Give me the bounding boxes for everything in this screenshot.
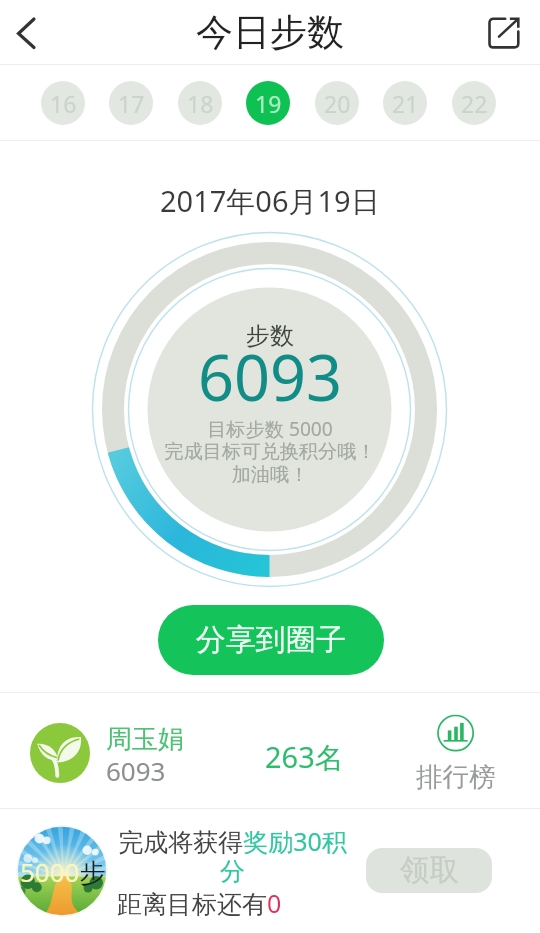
button[interactable]: 21 [383, 81, 427, 125]
staticText: 18 [187, 88, 214, 119]
staticText: 领取 [400, 852, 459, 889]
staticText: 263名 [265, 737, 344, 777]
button[interactable]: 19 [246, 81, 290, 125]
staticText: 6093 [106, 753, 166, 788]
staticText: 完成将获得奖励30积分 [117, 824, 348, 888]
button[interactable]: 18 [178, 81, 222, 125]
button[interactable]: Share [472, 0, 540, 64]
button[interactable]: 20 [315, 81, 359, 125]
button[interactable]: 17 [109, 81, 153, 125]
staticText: 22 [461, 88, 488, 119]
staticText: 目标步数 5000 完成目标可兑换积分哦！ 加油哦！ [164, 415, 376, 487]
button[interactable]: 16 [41, 81, 85, 125]
staticText: 距离目标还有0 [117, 886, 282, 920]
staticText: 21 [392, 88, 419, 119]
button[interactable]: 排行榜 [412, 708, 500, 794]
staticText: 5000步 [20, 854, 106, 890]
staticText: 周玉娟 [106, 723, 184, 756]
button[interactable]: 22 [452, 81, 496, 125]
staticText: 排行榜 [416, 760, 496, 793]
staticText: 2017年06月19日 [160, 181, 380, 221]
staticText: 17 [118, 88, 145, 119]
staticText: 6093 [198, 334, 343, 420]
button[interactable]: 领取 [366, 848, 492, 893]
staticText: 19 [255, 88, 282, 119]
button[interactable]: 分享到圈子 [158, 605, 384, 675]
staticText: 步数 [246, 321, 294, 351]
staticText: 今日步数 [196, 9, 344, 56]
staticText: 分享到圈子 [196, 621, 346, 659]
staticText: 20 [324, 88, 351, 119]
staticText: 16 [50, 88, 77, 119]
button[interactable]: Back [0, 0, 66, 64]
